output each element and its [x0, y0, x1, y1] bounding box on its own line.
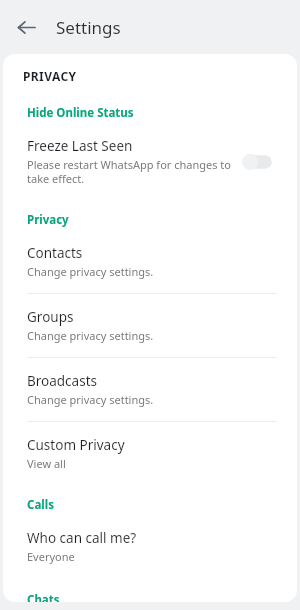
staticText: Groups [27, 308, 74, 326]
button[interactable]: Back [8, 9, 44, 45]
staticText: Freeze Last Seen [27, 137, 133, 155]
staticText: PRIVACY [23, 68, 77, 84]
staticText: Contacts [27, 244, 83, 262]
button[interactable]: Groups [3, 299, 297, 352]
staticText: Broadcasts [27, 372, 97, 390]
staticText: Custom Privacy [27, 436, 125, 454]
staticText: Hide Online Status [27, 105, 134, 121]
button[interactable]: Broadcasts [3, 363, 297, 416]
staticText: Change privacy settings. [27, 392, 154, 407]
button[interactable]: Custom Privacy [3, 427, 297, 480]
staticText: Chats [27, 592, 60, 602]
button[interactable]: Contacts [3, 235, 297, 288]
staticText: Everyone [27, 549, 75, 564]
staticText: Settings [56, 16, 121, 39]
staticText: Who can call me? [27, 529, 137, 547]
button[interactable]: Who can call me? [3, 520, 297, 573]
staticText: View all [27, 456, 66, 471]
staticText: Change privacy settings. [27, 264, 154, 279]
staticText: Please restart WhatsApp for changes to t… [27, 157, 231, 186]
staticText: Privacy [27, 212, 69, 228]
button[interactable]: Toggle off [243, 151, 279, 173]
staticText: Calls [27, 497, 54, 513]
staticText: Change privacy settings. [27, 328, 154, 343]
button[interactable]: Freeze Last Seen [3, 128, 297, 195]
